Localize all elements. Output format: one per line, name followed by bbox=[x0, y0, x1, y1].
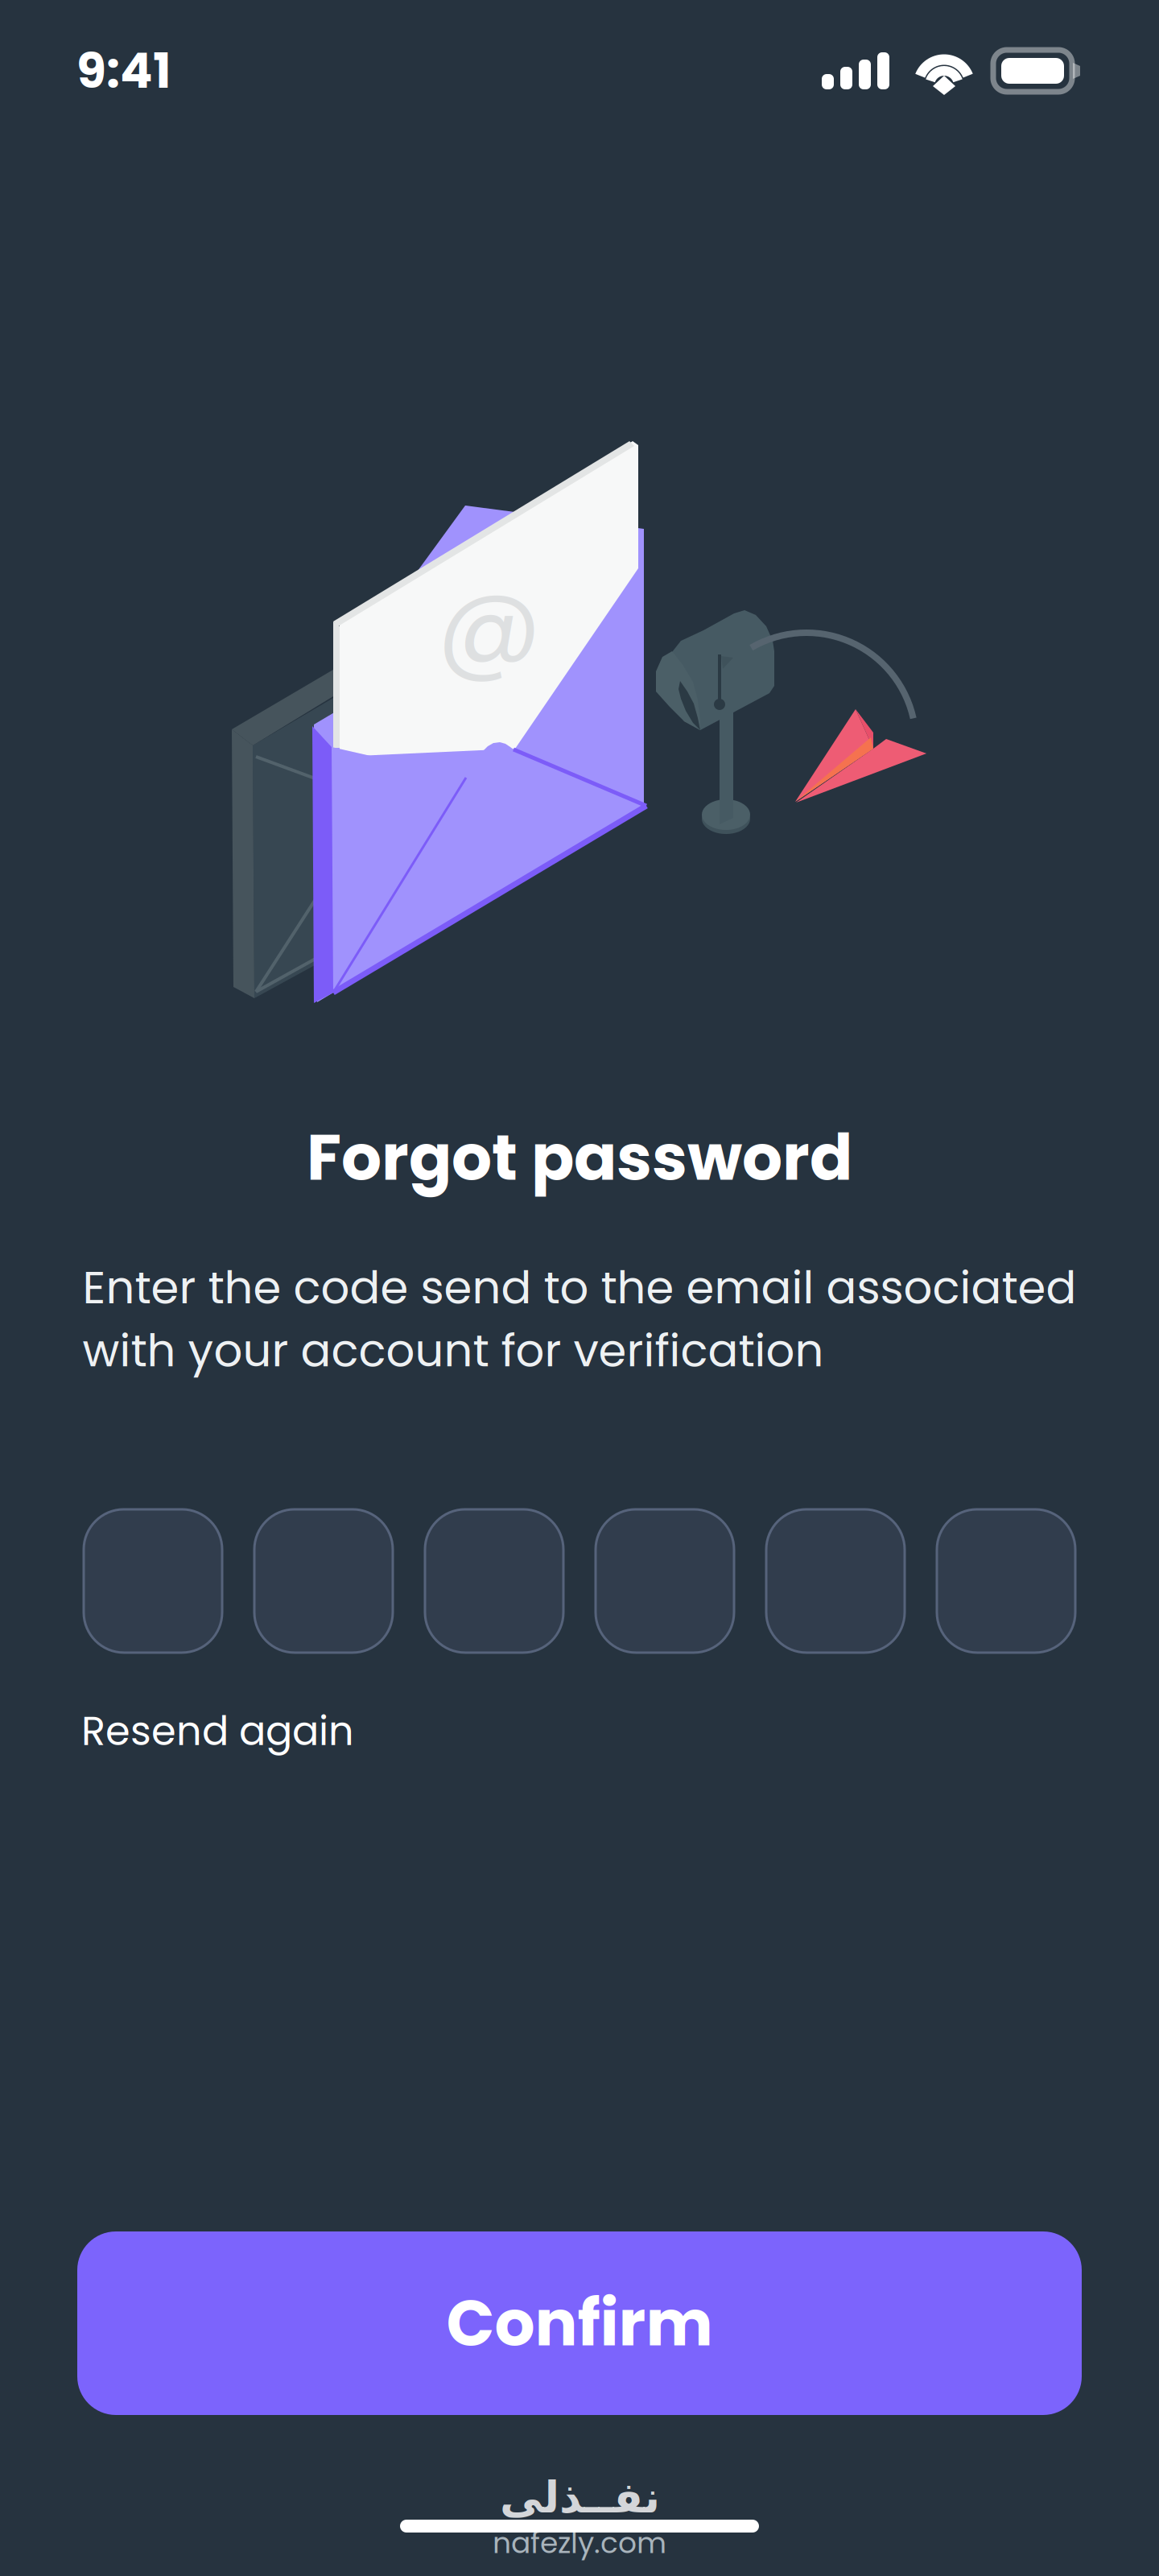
staticText: Forgot password bbox=[307, 1113, 852, 1202]
staticText: Enter the code send to the email associa… bbox=[82, 1256, 1077, 1382]
staticText: 9:41 bbox=[76, 37, 171, 105]
staticText: nafezly.com bbox=[493, 2523, 666, 2563]
staticText: @ bbox=[437, 553, 542, 698]
button[interactable]: Verification code digit bbox=[596, 1509, 734, 1653]
staticText: Resend again bbox=[81, 1703, 354, 1759]
button[interactable]: Verification code digit bbox=[425, 1509, 563, 1653]
staticText: نفــذلي bbox=[499, 2473, 660, 2523]
button[interactable]: Confirm bbox=[77, 2231, 1082, 2415]
button[interactable]: Verification code digit bbox=[84, 1509, 222, 1653]
button[interactable]: Verification code digit bbox=[937, 1509, 1075, 1653]
staticText: Confirm bbox=[446, 2279, 713, 2368]
button[interactable]: Verification code digit bbox=[254, 1509, 393, 1653]
button[interactable]: Verification code digit bbox=[766, 1509, 905, 1653]
button[interactable]: Resend again bbox=[81, 1703, 354, 1759]
